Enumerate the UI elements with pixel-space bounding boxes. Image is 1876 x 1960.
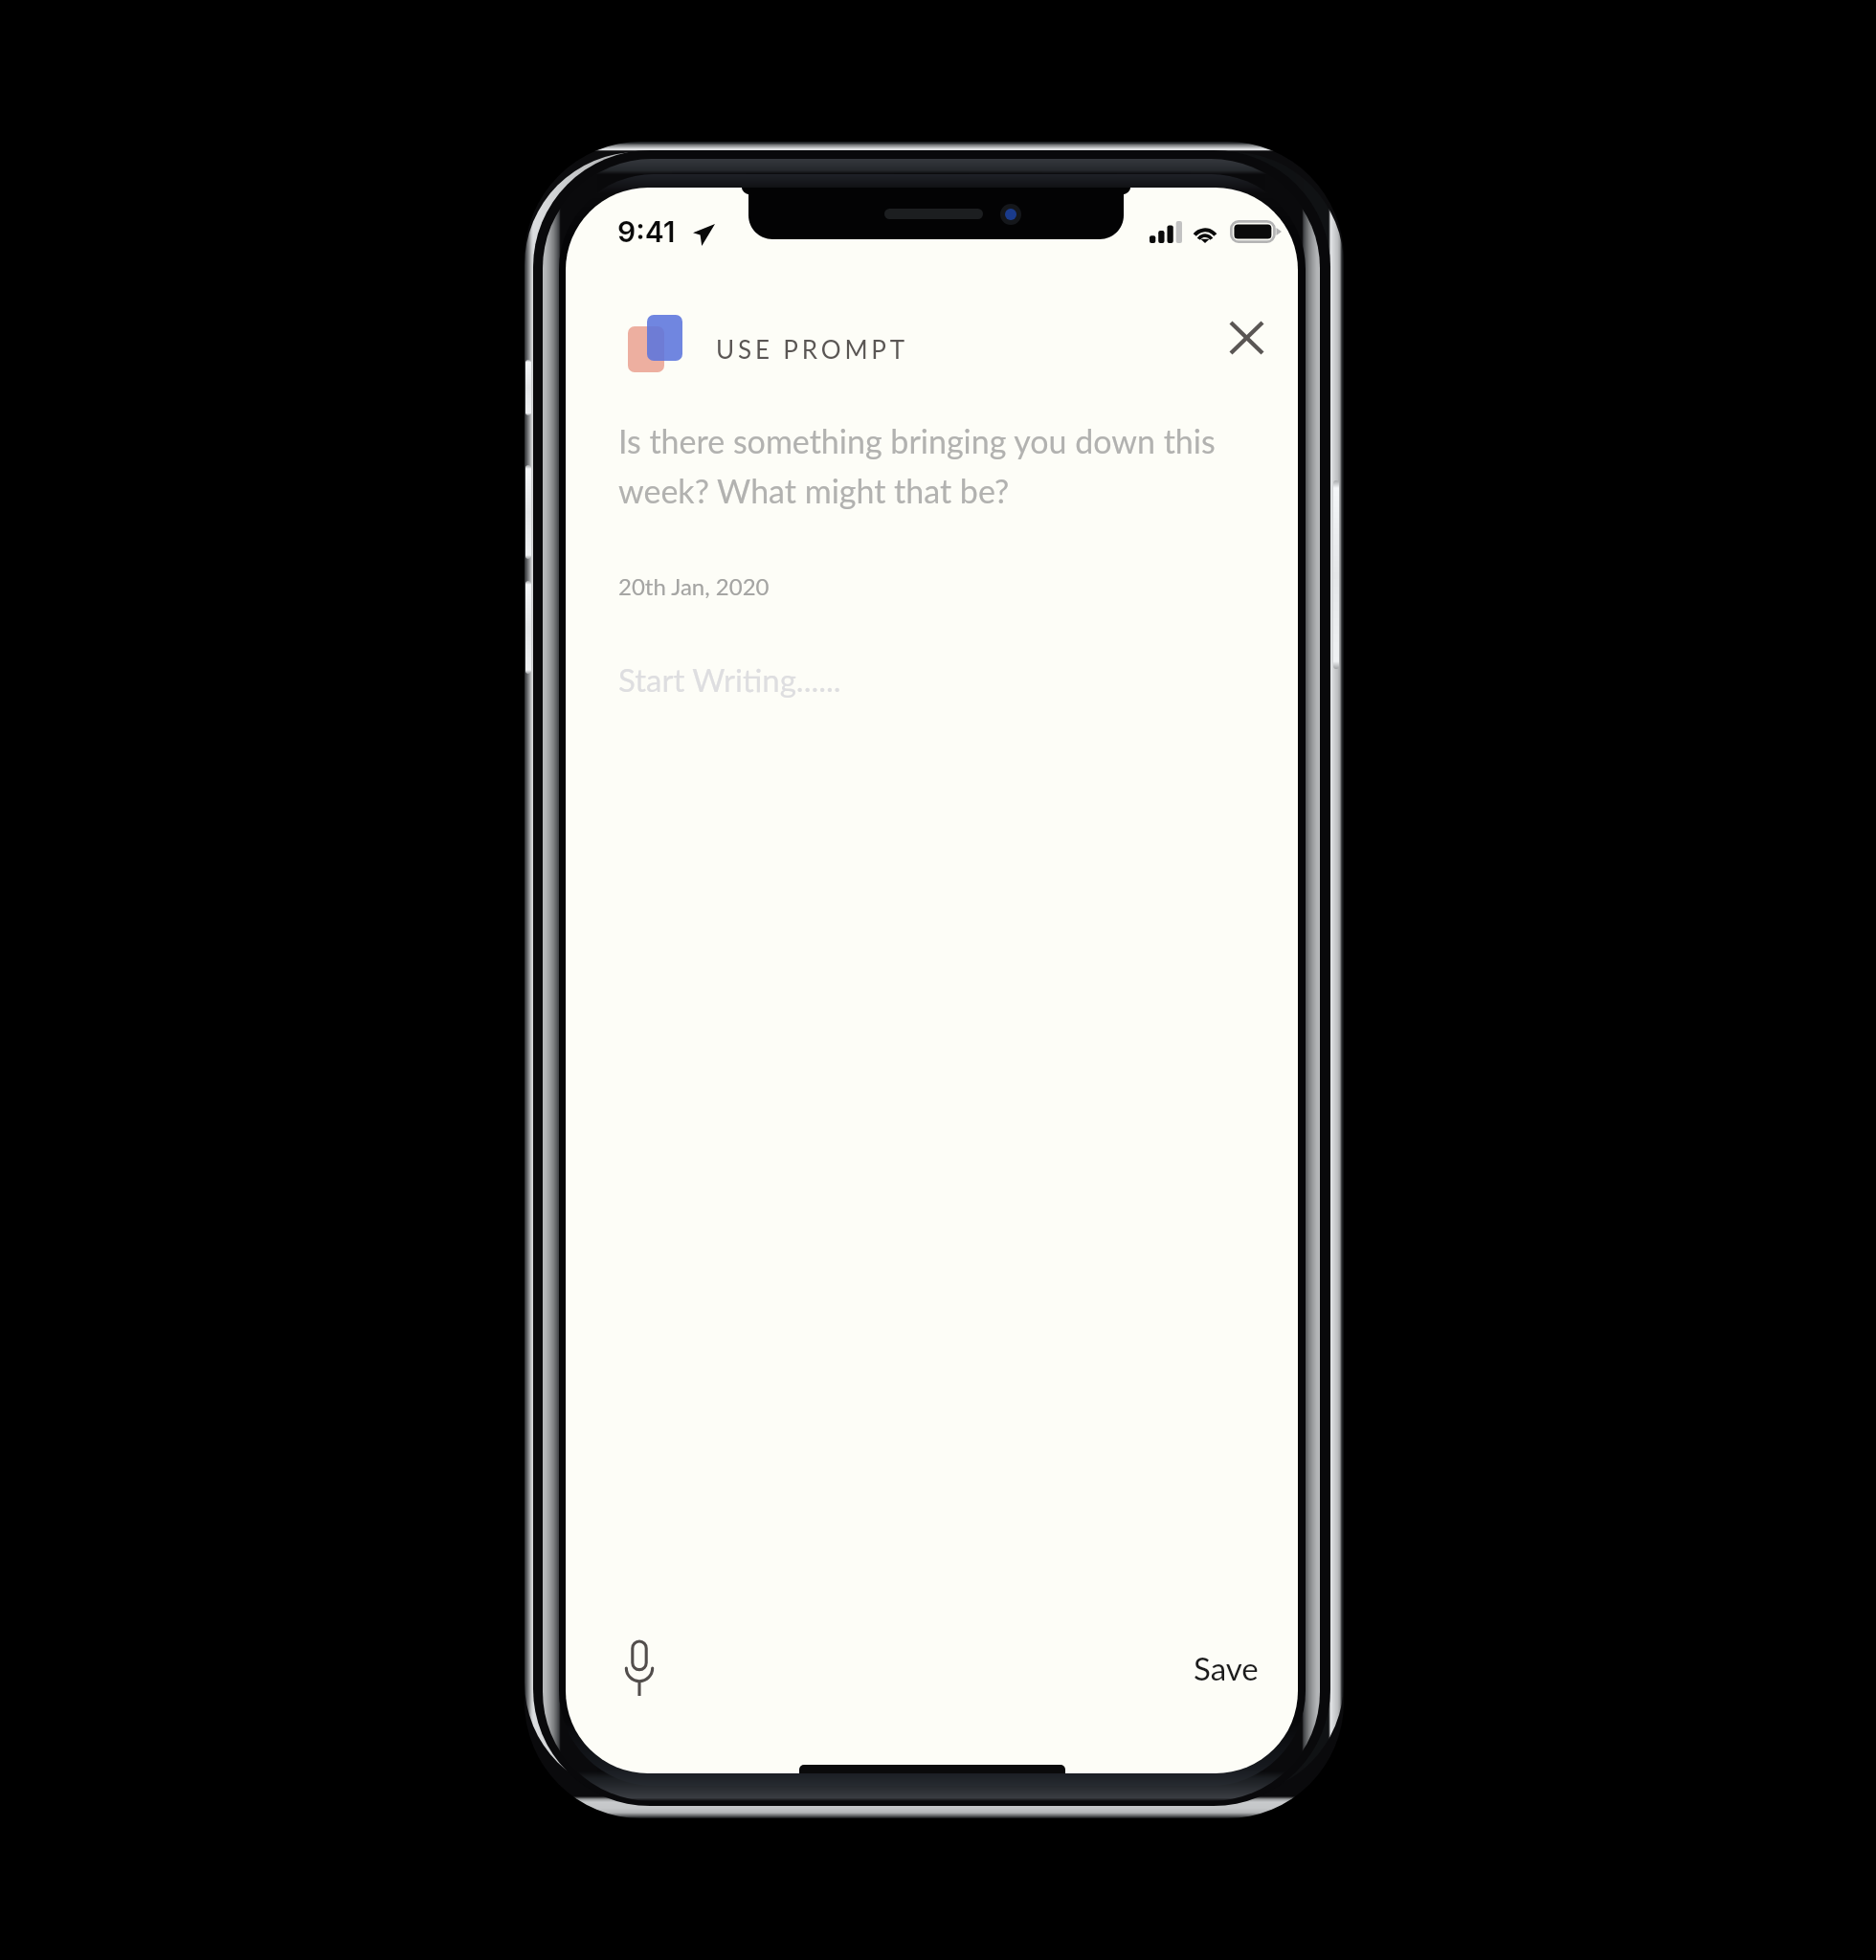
staticText: USE PROMPT: [716, 334, 909, 364]
button[interactable]: Start Writing......: [566, 647, 1298, 701]
staticText: 20th Jan, 2020: [618, 572, 770, 600]
staticText: Is there something bringing you down thi…: [618, 421, 1269, 510]
staticText: Save: [1194, 1649, 1259, 1687]
button[interactable]: USE PROMPT: [628, 315, 921, 372]
button[interactable]: Voice input: [605, 1634, 674, 1703]
button[interactable]: Close: [1211, 302, 1282, 373]
staticText: Start Writing......: [618, 660, 841, 699]
button[interactable]: Save: [1180, 1639, 1272, 1697]
staticText: 9:41: [617, 214, 676, 249]
